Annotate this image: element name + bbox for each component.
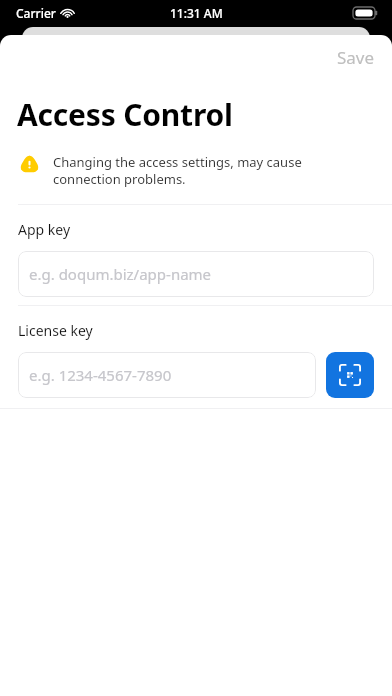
staticText: Changing the access settings, may cause … <box>53 153 370 188</box>
button[interactable]: e.g. doqum.biz/app-name <box>18 251 374 297</box>
staticText: e.g. 1234-4567-7890 <box>29 365 172 385</box>
staticText: App key <box>18 220 71 239</box>
button[interactable]: Save <box>320 40 392 75</box>
staticText: Carrier <box>16 5 56 21</box>
staticText: License key <box>18 321 93 340</box>
button[interactable]: Scan QR code <box>326 352 374 398</box>
staticText: e.g. doqum.biz/app-name <box>29 264 212 284</box>
button[interactable]: e.g. 1234-4567-7890 <box>18 352 316 398</box>
staticText: Save <box>337 46 375 69</box>
staticText: 11:31 AM <box>170 5 223 21</box>
staticText: Access Control <box>17 94 233 135</box>
